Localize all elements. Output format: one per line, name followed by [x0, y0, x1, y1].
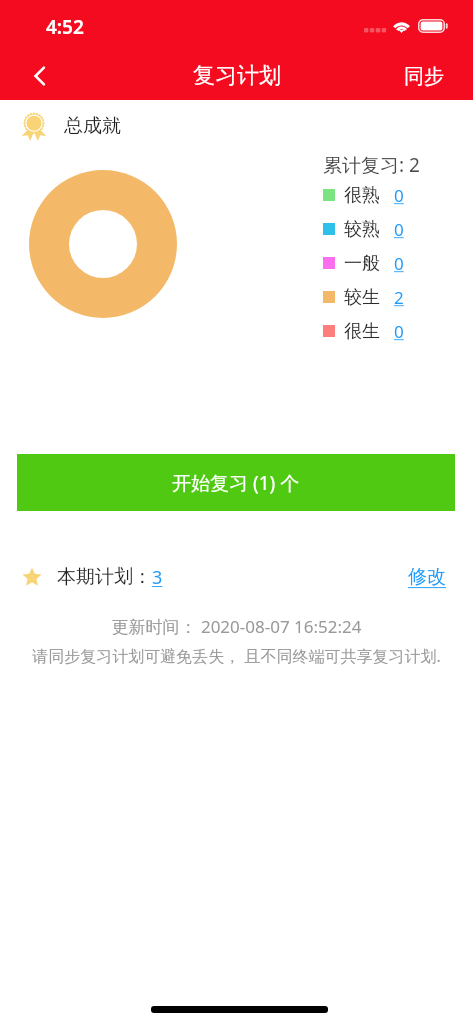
staticText: 0	[394, 252, 404, 275]
button[interactable]: 很熟	[323, 182, 404, 208]
button[interactable]: 开始复习 (1) 个	[17, 454, 455, 511]
button[interactable]: 较生	[323, 284, 404, 310]
staticText: 总成就	[64, 114, 121, 138]
button[interactable]: 较熟	[323, 216, 404, 242]
button[interactable]: 很生	[323, 318, 404, 344]
staticText: 开始复习 (1) 个	[172, 470, 300, 496]
button[interactable]: 修改	[408, 565, 446, 589]
staticText: 请同步复习计划可避免丢失， 且不同终端可共享复习计划.	[0, 645, 473, 667]
button[interactable]: 一般	[323, 250, 404, 276]
staticText: 较生	[344, 286, 380, 309]
staticText: 0	[394, 320, 404, 343]
staticText: 很生	[344, 320, 380, 343]
staticText: 本期计划：	[57, 565, 152, 589]
button[interactable]: 3	[152, 565, 163, 589]
staticText: 0	[394, 184, 404, 207]
staticText: 很熟	[344, 184, 380, 207]
staticText: 同步	[404, 64, 444, 89]
staticText: 累计复习: 2	[323, 152, 420, 178]
staticText: 修改	[408, 565, 446, 589]
button[interactable]: 同步	[392, 59, 456, 93]
staticText: 一般	[344, 252, 380, 275]
staticText: 2	[394, 286, 404, 309]
button[interactable]: Back	[15, 54, 59, 98]
staticText: 复习计划	[193, 62, 281, 90]
staticText: 3	[152, 565, 163, 589]
staticText: 更新时间： 2020-08-07 16:52:24	[0, 615, 473, 638]
staticText: 较熟	[344, 218, 380, 241]
staticText: 0	[394, 218, 404, 241]
staticText: 4:52	[46, 14, 84, 40]
